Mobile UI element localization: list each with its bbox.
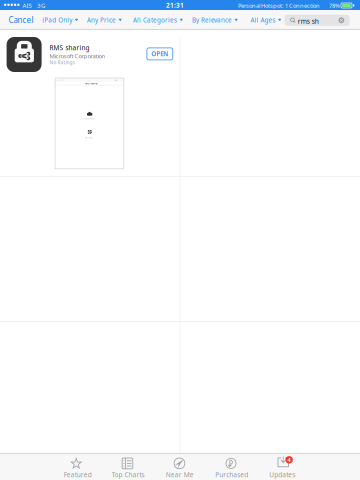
- staticText: ••▮: [114, 79, 117, 81]
- button[interactable]: By Relevance: [189, 11, 241, 29]
- button[interactable]: All Categories: [130, 11, 186, 29]
- button[interactable]: Any Price: [84, 11, 125, 29]
- staticText: 78%: [329, 1, 340, 9]
- button[interactable]: Updates: [257, 453, 309, 480]
- staticText: Documents: [83, 117, 94, 120]
- staticText: Purchased: [215, 470, 248, 479]
- staticText: Near Me: [166, 470, 194, 479]
- staticText: iPad Only: [42, 16, 72, 24]
- staticText: 21:31: [166, 1, 184, 10]
- button[interactable]: rms sh: [285, 15, 350, 26]
- button[interactable]: Cancel: [5, 11, 36, 29]
- button[interactable]: Near Me: [153, 453, 205, 480]
- staticText: Top Charts: [111, 470, 144, 479]
- staticText: Updates: [269, 470, 295, 479]
- staticText: Featured: [64, 470, 92, 479]
- staticText: OPEN: [151, 50, 168, 58]
- staticText: Personal Hotspot: 1 Connection: [238, 1, 320, 9]
- button[interactable]: Top Charts: [102, 453, 154, 480]
- staticText: No Ratings: [49, 59, 74, 65]
- staticText: Settings: [84, 136, 92, 139]
- staticText: AIS: [22, 1, 31, 10]
- button[interactable]: Featured: [51, 453, 103, 480]
- button[interactable]: Purchased: [205, 453, 257, 480]
- staticText: RMS sharing: [49, 43, 89, 52]
- staticText: All Categories: [133, 16, 177, 24]
- staticText: 3G: [37, 1, 45, 10]
- staticText: Any Price: [87, 16, 116, 24]
- button[interactable]: iPad Only: [39, 11, 81, 29]
- button[interactable]: OPEN: [147, 48, 173, 60]
- staticText: RMS sharing: [85, 82, 97, 85]
- staticText: By Relevance: [192, 16, 232, 24]
- staticText: Microsoft Corporation: [49, 52, 105, 60]
- staticText: All Ages: [250, 16, 275, 24]
- staticText: •••• ≡: [57, 79, 64, 81]
- staticText: •••: [87, 79, 90, 81]
- button[interactable]: All Ages: [247, 11, 284, 29]
- staticText: rms sh: [298, 17, 319, 26]
- staticText: 4: [288, 456, 291, 464]
- staticText: Cancel: [8, 15, 33, 25]
